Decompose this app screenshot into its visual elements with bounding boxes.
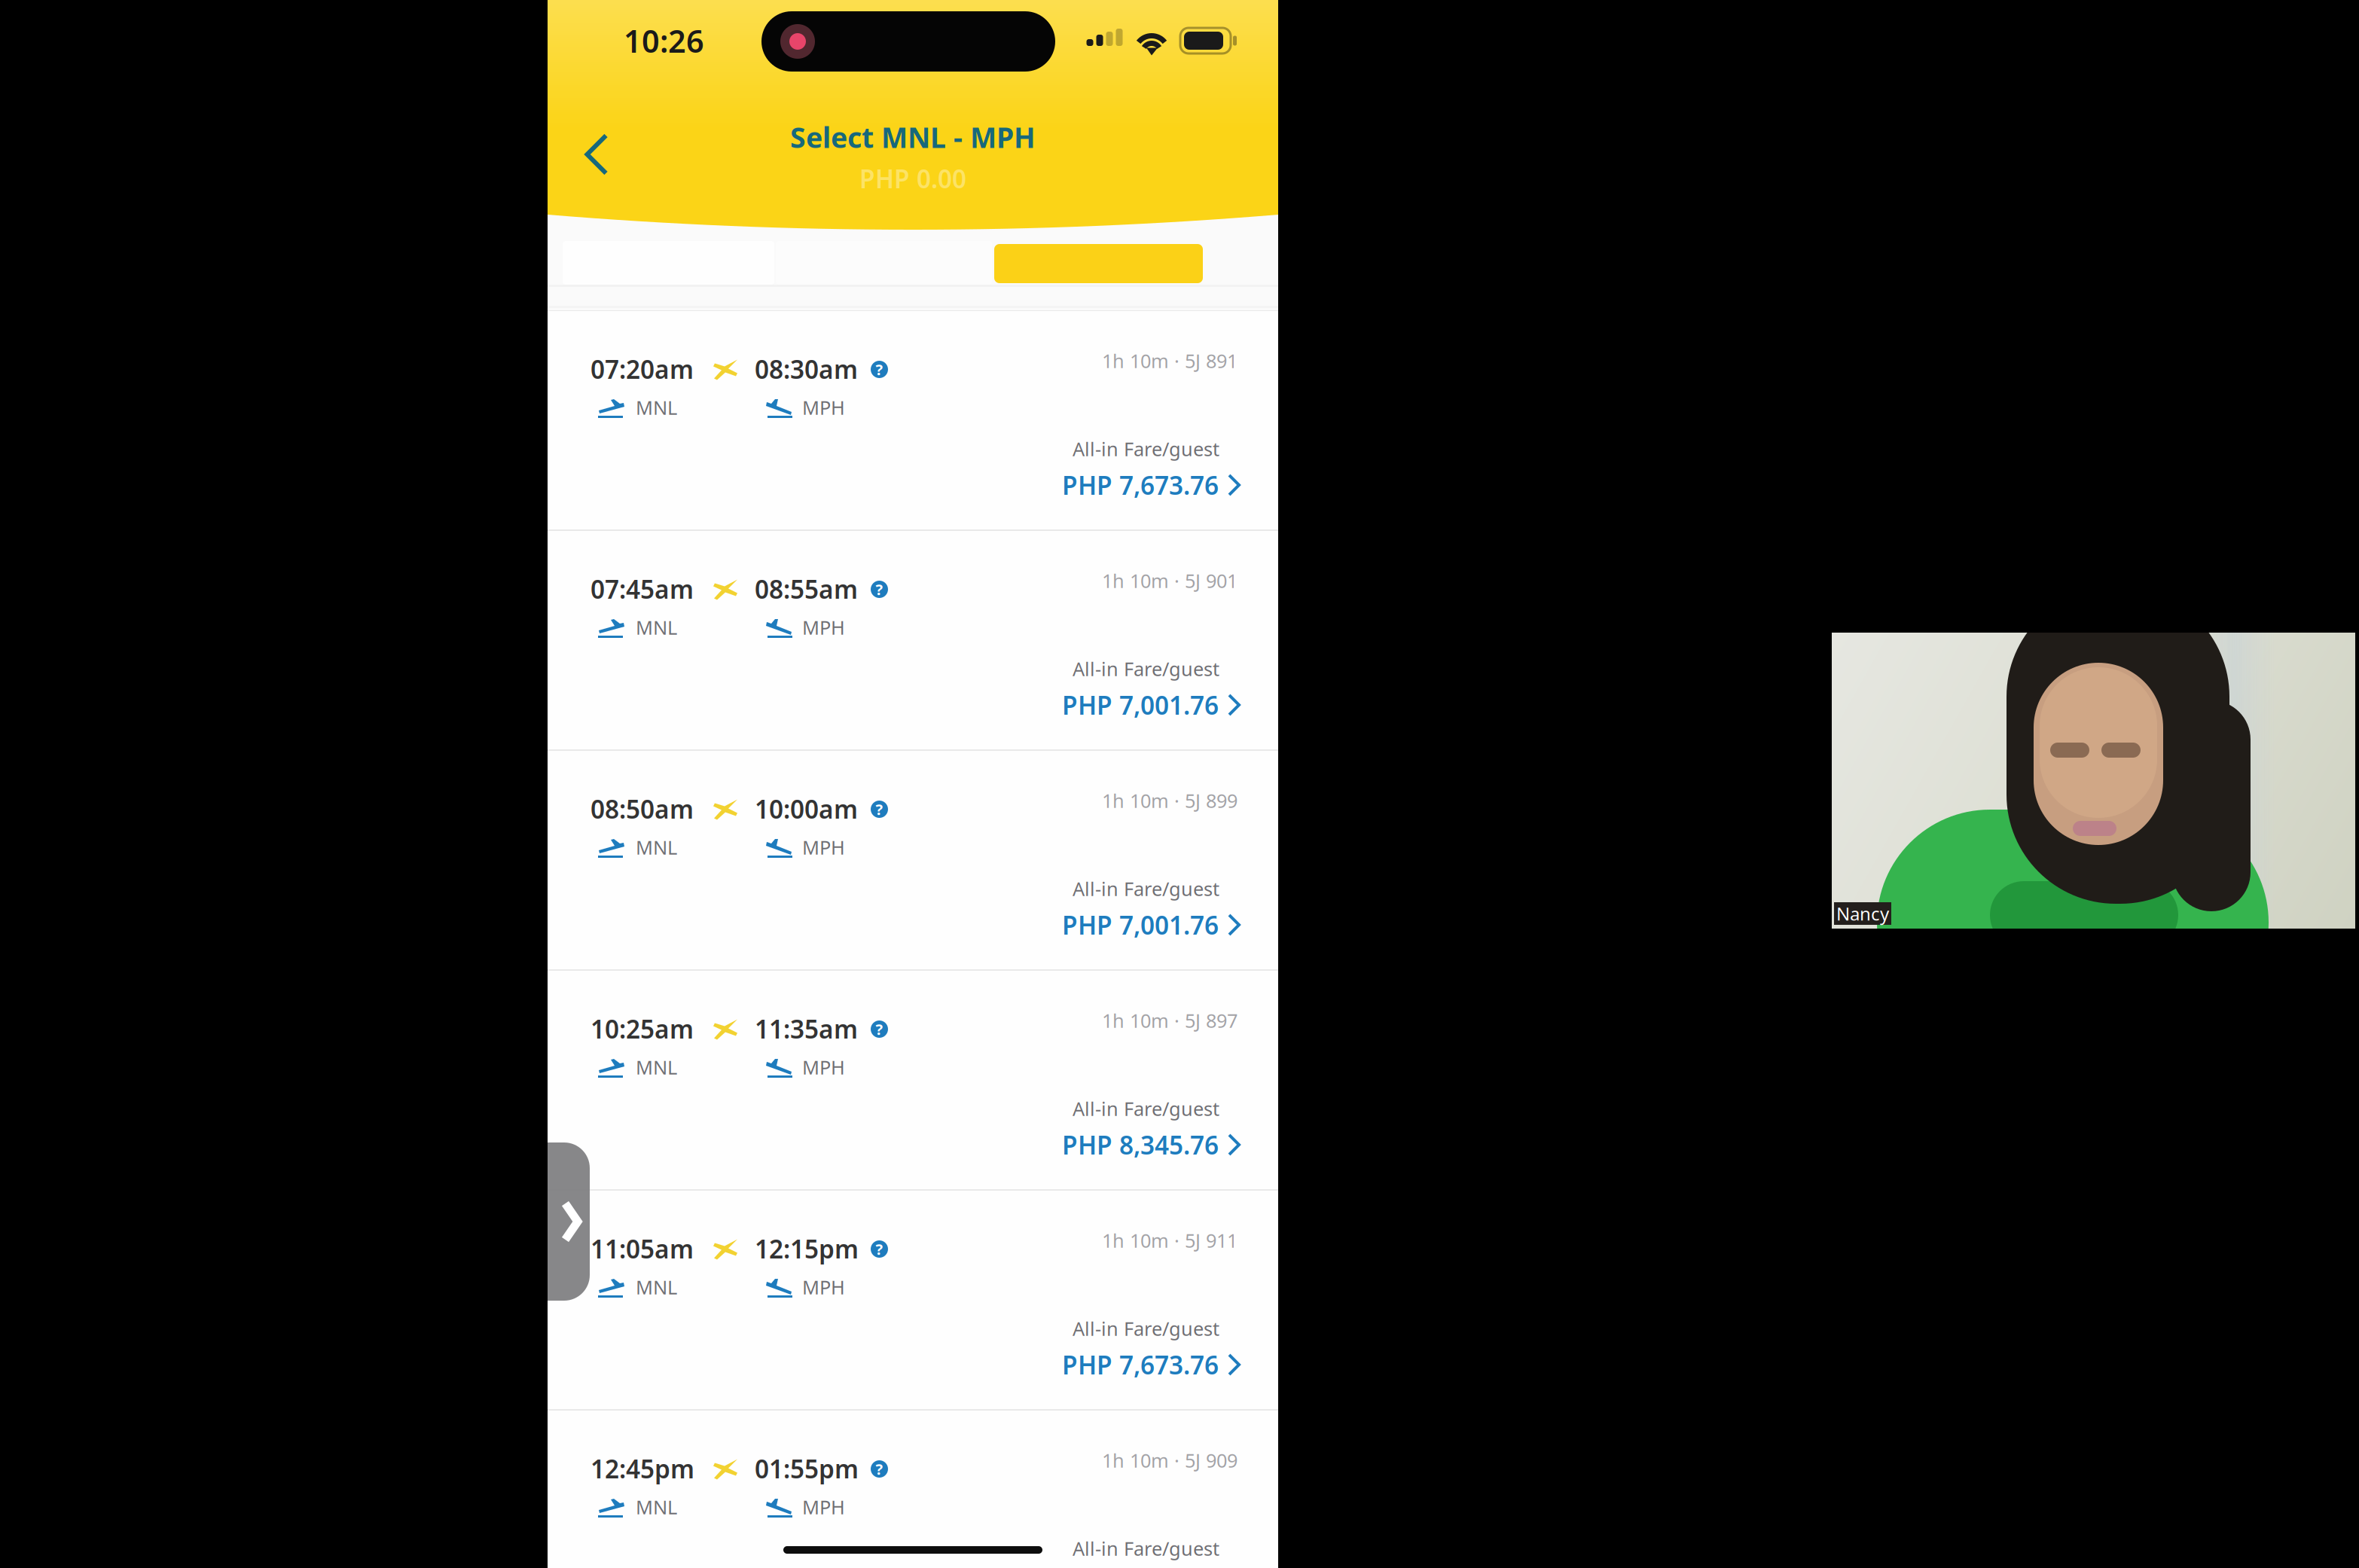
staticText: All-in Fare/guest	[1073, 1536, 1219, 1561]
staticText: 07:20am	[591, 352, 694, 386]
staticText: All-in Fare/guest	[1073, 1316, 1219, 1341]
staticText: 1h 10m · 5J 909	[1102, 1448, 1237, 1473]
button[interactable]: Selected date	[994, 244, 1203, 283]
staticText: MNL	[636, 1055, 677, 1080]
staticText: 08:55am	[755, 572, 858, 606]
staticText: All-in Fare/guest	[1073, 1096, 1219, 1121]
button[interactable]: 12:45pm	[548, 1411, 1278, 1568]
staticText: 10:00am	[755, 792, 858, 826]
staticText: ?	[876, 579, 883, 599]
staticText: 01:55pm	[755, 1452, 859, 1485]
staticText: MPH	[802, 1494, 845, 1520]
staticText: MNL	[636, 1494, 677, 1520]
staticText: 08:50am	[591, 792, 694, 826]
staticText: ?	[876, 1459, 883, 1479]
staticText: MPH	[802, 835, 845, 860]
staticText: 12:45pm	[591, 1452, 694, 1485]
staticText: 1h 10m · 5J 899	[1102, 788, 1237, 813]
staticText: All-in Fare/guest	[1073, 436, 1219, 462]
button[interactable]: 07:45am	[548, 531, 1278, 751]
staticText: 1h 10m · 5J 911	[1102, 1228, 1237, 1253]
staticText: 08:30am	[755, 352, 858, 386]
button[interactable]: 07:20am	[548, 311, 1278, 531]
staticText: MPH	[802, 1055, 845, 1080]
staticText: PHP 0.00	[859, 162, 966, 195]
staticText: MPH	[802, 395, 845, 420]
staticText: ?	[876, 359, 883, 379]
staticText: 1h 10m · 5J 901	[1102, 568, 1237, 593]
staticText: MNL	[636, 615, 677, 640]
button[interactable]: 08:50am	[548, 751, 1278, 971]
staticText: 10:25am	[591, 1012, 694, 1045]
staticText: MPH	[802, 615, 845, 640]
staticText: 1h 10m · 5J 897	[1102, 1008, 1237, 1033]
staticText: 11:35am	[755, 1012, 858, 1045]
staticText: 07:45am	[591, 572, 694, 606]
staticText: PHP 8,345.76	[1062, 1128, 1219, 1161]
staticText: MNL	[636, 395, 677, 420]
staticText: MNL	[636, 1274, 677, 1300]
button[interactable]: 10:25am	[548, 971, 1278, 1191]
staticText: All-in Fare/guest	[1073, 876, 1219, 901]
staticText: Nancy	[1836, 902, 1889, 926]
staticText: PHP 7,001.76	[1062, 908, 1219, 942]
staticText: ?	[876, 1239, 883, 1259]
button[interactable]: Expand panel	[522, 1142, 590, 1301]
staticText: PHP 7,001.76	[1062, 688, 1219, 722]
button[interactable]: Back	[560, 118, 633, 191]
staticText: 10:26	[624, 20, 704, 61]
staticText: ?	[876, 1019, 883, 1039]
staticText: All-in Fare/guest	[1073, 656, 1219, 681]
staticText: PHP 7,673.76	[1062, 468, 1219, 502]
staticText: PHP 7,673.76	[1062, 1348, 1219, 1381]
staticText: MPH	[802, 1274, 845, 1300]
staticText: 11:05am	[591, 1232, 694, 1265]
staticText: ?	[876, 799, 883, 819]
button[interactable]: 11:05am	[548, 1191, 1278, 1411]
staticText: MNL	[636, 835, 677, 860]
staticText: Select MNL - MPH	[790, 118, 1036, 156]
staticText: 1h 10m · 5J 891	[1102, 348, 1237, 373]
staticText: 12:15pm	[755, 1232, 859, 1265]
